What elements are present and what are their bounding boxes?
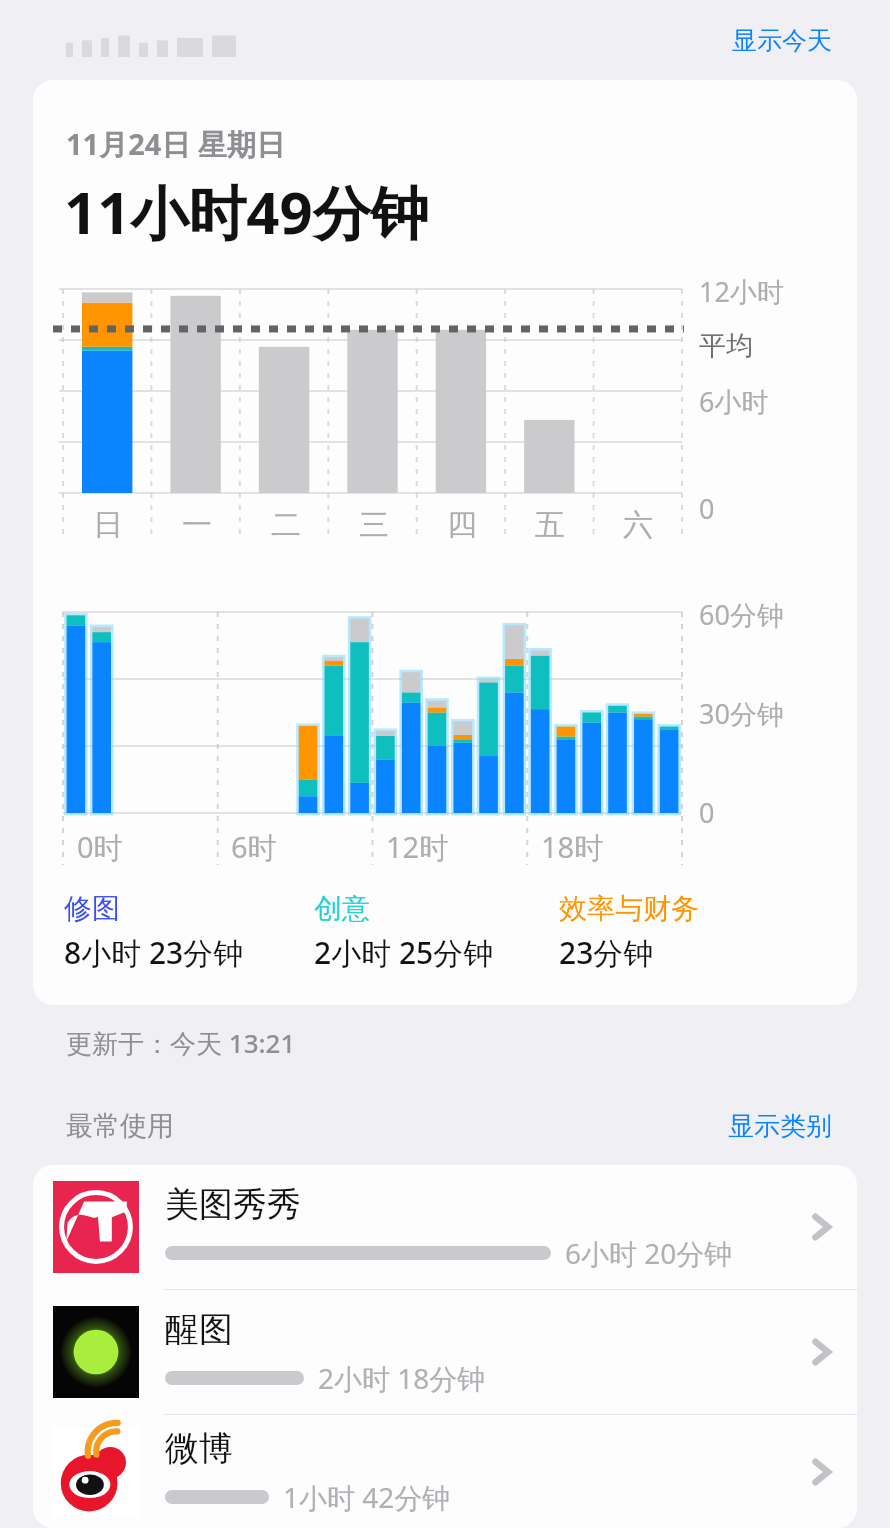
staticText: 18时 [541,827,604,867]
button[interactable]: 效率与财务 [559,891,759,973]
button[interactable]: 醒图 [33,1290,857,1414]
staticText: 12时 [386,827,449,867]
staticText: 平均 [699,329,753,363]
staticText: 2小时 18分钟 [318,1359,486,1397]
staticText: 醒图 [165,1308,233,1351]
staticText: 修图 [64,891,120,926]
staticText: 六 [623,506,653,544]
staticText: 微博 [165,1427,233,1470]
other: 查看详情 [787,1165,857,1289]
staticText: 6小时 20分钟 [565,1234,733,1272]
staticText: 11小时49分钟 [64,172,429,251]
staticText: 最常使用 [66,1109,174,1143]
staticText: 11月24日 星期日 [66,124,285,164]
staticText: 创意 [314,891,370,926]
staticText: 一 [182,506,212,544]
button[interactable]: 修图 [64,891,314,973]
staticText: 美图秀秀 [165,1183,301,1226]
staticText: 五 [535,506,565,544]
staticText: 8小时 23分钟 [64,932,244,973]
button[interactable]: 微博 [33,1415,857,1528]
button[interactable]: 美图秀秀 [33,1165,857,1289]
staticText: 二 [271,506,301,544]
staticText: 60分钟 [699,596,784,633]
staticText: 三 [359,506,389,544]
staticText: 日 [93,506,123,544]
staticText: 2小时 25分钟 [314,932,494,973]
staticText: 6小时 [699,383,769,420]
staticText: 效率与财务 [559,891,699,926]
button[interactable]: 11月24日 星期日 [33,80,857,1005]
other: 查看详情 [787,1415,857,1528]
staticText: 1小时 42分钟 [283,1478,451,1516]
staticText: 0 [699,794,715,831]
staticText: 6时 [231,827,277,867]
staticText: 更新于：今天 13:21 [66,1025,296,1061]
staticText: 23分钟 [559,932,654,973]
button[interactable]: 创意 [314,891,559,973]
staticText: 12小时 [699,273,784,310]
staticText: 30分钟 [699,695,784,732]
staticText: 0时 [77,827,123,867]
staticText: 四 [447,506,477,544]
button[interactable]: 显示今天 [732,25,890,56]
button[interactable]: 显示类别 [728,1110,832,1143]
other: 查看详情 [787,1290,857,1414]
staticText: 0 [699,490,715,527]
